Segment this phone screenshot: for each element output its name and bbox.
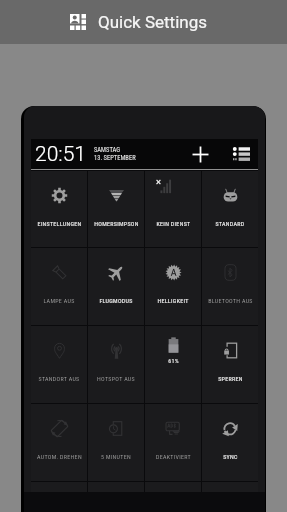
staticText: HOMERSIMPSON xyxy=(94,220,139,227)
staticText: KEIN DIENST xyxy=(156,220,191,227)
staticText: SYNC xyxy=(223,453,238,460)
staticText: DEAKTIVIERT xyxy=(156,453,191,460)
button[interactable]: SPERREN xyxy=(202,326,258,403)
staticText: STANDORT AUS xyxy=(38,375,80,382)
staticText: Quick Settings xyxy=(98,12,208,32)
button[interactable]: 61% xyxy=(145,326,201,403)
button[interactable]: SYNC xyxy=(202,404,258,481)
button[interactable]: BLUETOOTH AUS xyxy=(202,248,258,325)
button[interactable]: HOMERSIMPSON xyxy=(88,171,144,247)
staticText: LAMPE AUS xyxy=(43,297,75,304)
button[interactable]: HELLIGKEIT xyxy=(145,248,201,325)
staticText: HOTSPOT AUS xyxy=(97,375,135,382)
staticText: BLUETOOTH AUS xyxy=(208,297,253,304)
staticText: 20:51 xyxy=(35,142,87,167)
staticText: 61% xyxy=(168,357,179,364)
staticText: AUTOM. DREHEN xyxy=(37,453,82,460)
button[interactable]: AUTOM. DREHEN xyxy=(31,404,87,481)
staticText: 5 MINUTEN xyxy=(101,453,131,460)
button[interactable]: STANDARD xyxy=(202,171,258,247)
staticText: SPERREN xyxy=(218,375,243,382)
staticText: EINSTELLUNGEN xyxy=(37,220,82,227)
button[interactable]: 5 MINUTEN xyxy=(88,404,144,481)
button[interactable]: DEAKTIVIERT xyxy=(145,404,201,481)
button[interactable]: STANDORT AUS xyxy=(31,326,87,403)
button[interactable]: KEIN DIENST xyxy=(145,171,201,247)
staticText: 13. SEPTEMBER xyxy=(94,154,136,162)
button[interactable]: Add tile xyxy=(190,144,210,164)
staticText: HELLIGKEIT xyxy=(157,297,189,304)
button[interactable]: Edit tiles xyxy=(231,144,251,164)
button[interactable]: FLUGMODUS xyxy=(88,248,144,325)
staticText: STANDARD xyxy=(215,220,245,227)
button[interactable]: LAMPE AUS xyxy=(31,248,87,325)
button[interactable]: EINSTELLUNGEN xyxy=(31,171,87,247)
staticText: FLUGMODUS xyxy=(99,297,133,304)
staticText: SAMSTAG xyxy=(94,146,121,154)
button[interactable]: HOTSPOT AUS xyxy=(88,326,144,403)
